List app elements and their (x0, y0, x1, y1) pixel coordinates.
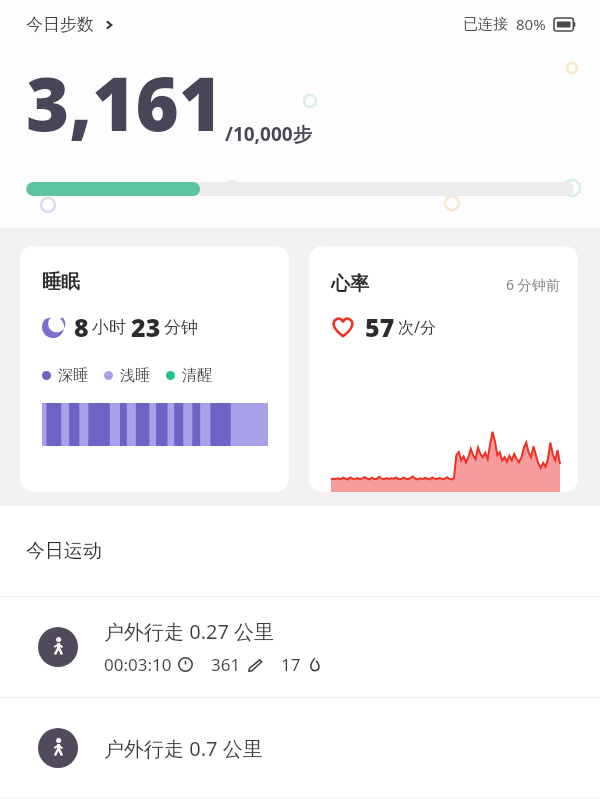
staticText: 80% (516, 14, 546, 34)
staticText: 00:03:10 (104, 653, 172, 676)
staticText: 8 (74, 310, 89, 344)
staticText: 户外行走 0.27 公里 (104, 618, 275, 645)
staticText: 6 分钟前 (506, 275, 560, 294)
staticText: 今日运动 (26, 539, 102, 563)
staticText: 361 (211, 653, 241, 676)
staticText: 分钟 (164, 317, 198, 338)
staticText: 浅睡 (120, 366, 150, 385)
staticText: 次/分 (398, 316, 436, 338)
staticText: 23 (131, 310, 161, 344)
button[interactable]: 今日步数 (26, 14, 116, 35)
staticText: 17 (281, 653, 301, 676)
staticText: 户外行走 0.7 公里 (104, 735, 263, 762)
staticText: /10,000步 (225, 121, 312, 147)
staticText: 深睡 (58, 366, 88, 385)
staticText: 心率 (331, 272, 369, 296)
button[interactable]: 睡眠 (20, 246, 289, 492)
button[interactable]: 今日运动 (0, 506, 600, 596)
staticText: 57 (365, 310, 395, 344)
staticText: 清醒 (182, 366, 212, 385)
staticText: 小时 (92, 317, 126, 338)
button[interactable]: 心率 (309, 246, 578, 492)
staticText: 今日步数 (26, 14, 94, 35)
staticText: 3,161 (26, 52, 223, 153)
button[interactable]: Device battery 80 percent connected (463, 14, 576, 34)
button[interactable]: 户外行走 0.7 公里 (0, 698, 600, 798)
staticText: 已连接 (463, 15, 508, 34)
button[interactable]: 户外行走 0.27 公里 (0, 597, 600, 697)
staticText: 睡眠 (42, 270, 80, 294)
